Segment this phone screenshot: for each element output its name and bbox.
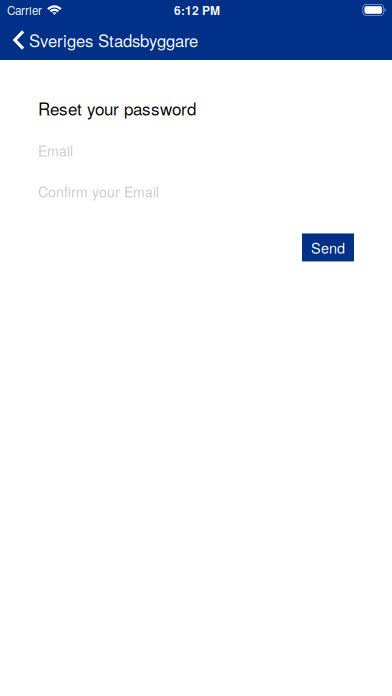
button[interactable]: Confirm your Email (38, 181, 354, 201)
staticText: Reset your password (38, 96, 196, 120)
staticText: Sveriges Stadsbyggare (29, 28, 198, 52)
button[interactable]: Back to Sveriges Stadsbyggare (0, 20, 208, 60)
button[interactable]: Email (38, 140, 354, 160)
button[interactable]: Send (302, 233, 354, 261)
staticText: Carrier (7, 2, 42, 18)
staticText: 6:12 PM (174, 1, 220, 19)
staticText: Email (38, 140, 73, 160)
staticText: Confirm your Email (38, 181, 159, 201)
staticText: Send (311, 237, 345, 258)
